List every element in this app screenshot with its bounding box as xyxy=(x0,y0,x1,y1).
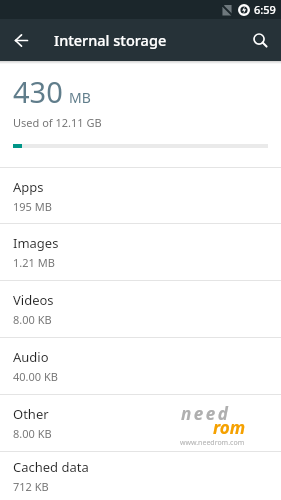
staticText: 6:59 xyxy=(254,2,276,17)
button[interactable]: Apps xyxy=(0,168,281,223)
staticText: need xyxy=(181,402,231,425)
button[interactable]: Cached data xyxy=(0,452,281,500)
button[interactable] xyxy=(0,19,42,61)
staticText: rom xyxy=(213,416,246,439)
staticText: Images xyxy=(13,234,59,252)
staticText: Internal storage xyxy=(54,30,167,50)
staticText: Audio xyxy=(13,348,49,366)
button[interactable]: Audio xyxy=(0,338,281,394)
staticText: Cached data xyxy=(13,458,89,476)
staticText: 8.00 KB xyxy=(13,426,52,441)
button[interactable]: Other xyxy=(0,395,281,451)
staticText: Used of 12.11 GB xyxy=(13,115,102,130)
staticText: Other xyxy=(13,405,49,423)
staticText: MB xyxy=(69,88,91,107)
button[interactable]: Images xyxy=(0,224,281,280)
staticText: 1.21 MB xyxy=(13,255,55,270)
staticText: www.needrom.com xyxy=(180,438,245,448)
staticText: 40.00 KB xyxy=(13,369,58,384)
staticText: 195 MB xyxy=(13,199,52,214)
staticText: 430 xyxy=(13,72,63,111)
staticText: Apps xyxy=(13,178,44,196)
staticText: 712 KB xyxy=(13,479,49,494)
button[interactable]: Videos xyxy=(0,281,281,337)
staticText: Videos xyxy=(13,291,54,309)
staticText: 8.00 KB xyxy=(13,312,52,327)
button[interactable] xyxy=(239,19,281,61)
